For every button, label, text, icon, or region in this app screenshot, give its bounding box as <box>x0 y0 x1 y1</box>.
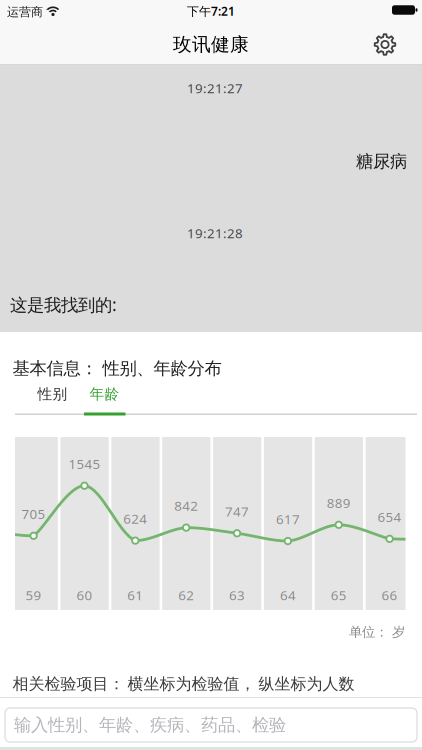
staticText: 19:21:27 <box>187 79 243 97</box>
staticText: 相关检验项目： 横坐标为检验值， 纵坐标为人数 <box>12 674 354 694</box>
staticText: 65 <box>331 586 347 604</box>
staticText: 61 <box>127 586 143 604</box>
staticText: 这是我找到的: <box>10 293 117 316</box>
staticText: 624 <box>123 510 147 527</box>
staticText: 基本信息： 性别、年龄分布 <box>12 358 221 379</box>
staticText: 62 <box>178 586 194 604</box>
staticText: 糖尿病 <box>356 151 407 172</box>
staticText: 性别 <box>37 385 67 403</box>
staticText: 单位： 岁 <box>349 624 405 640</box>
staticText: 年龄 <box>89 385 119 403</box>
staticText: 747 <box>225 502 249 520</box>
staticText: 运营商 <box>7 5 43 19</box>
staticText: 705 <box>22 505 46 523</box>
staticText: 输入性别、年龄、疾病、药品、检验 <box>14 714 286 736</box>
button[interactable]: 年龄 <box>81 379 128 409</box>
staticText: 889 <box>327 494 351 512</box>
staticText: 617 <box>276 510 300 528</box>
staticText: 60 <box>76 586 92 604</box>
staticText: 63 <box>229 586 245 604</box>
staticText: 64 <box>280 586 296 604</box>
staticText: 66 <box>382 586 398 604</box>
button[interactable]: 性别 <box>29 379 76 409</box>
staticText: 下午7:21 <box>187 3 235 19</box>
staticText: 842 <box>174 497 198 514</box>
button[interactable]: 输入性别、年龄、疾病、药品、检验 <box>5 708 417 742</box>
staticText: 654 <box>378 508 402 526</box>
button[interactable]: Settings <box>365 24 405 64</box>
staticText: 1545 <box>68 455 100 473</box>
staticText: 59 <box>26 586 42 604</box>
staticText: 19:21:28 <box>187 224 243 242</box>
staticText: 玫讯健康 <box>173 33 249 56</box>
